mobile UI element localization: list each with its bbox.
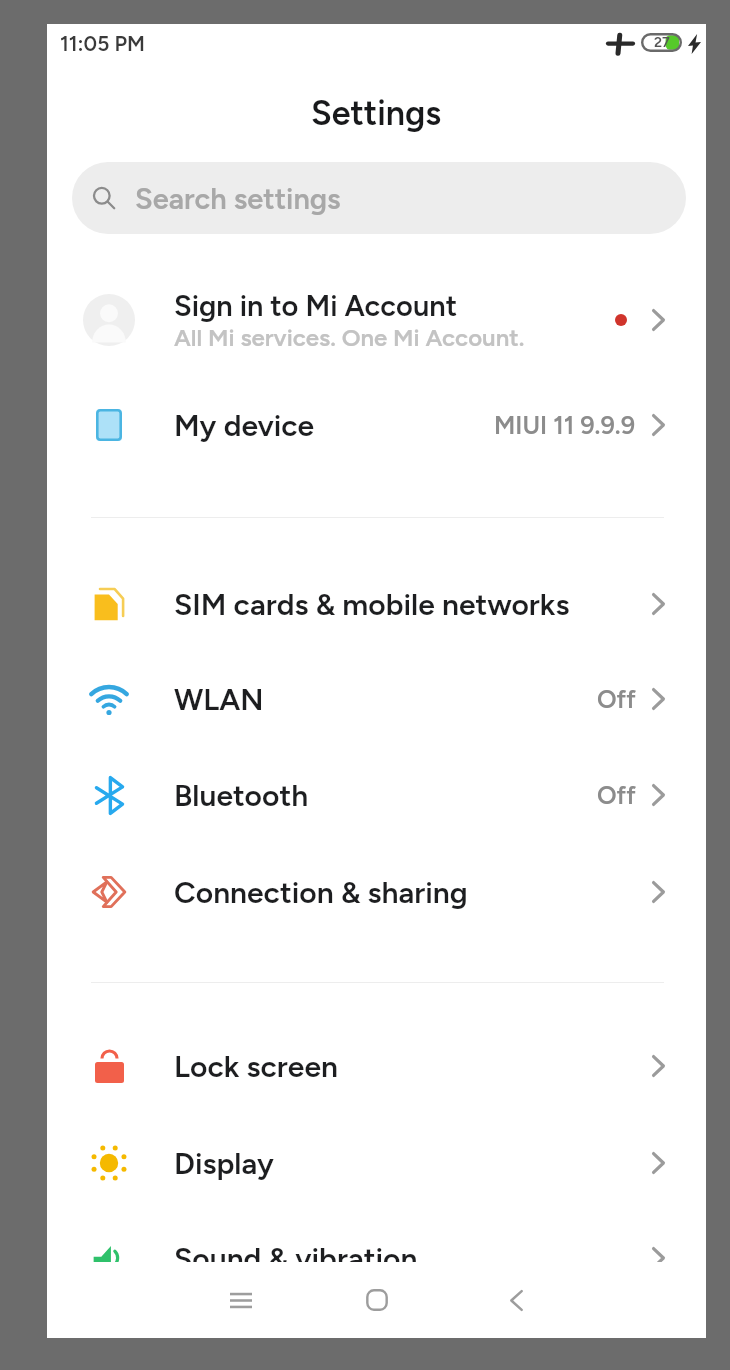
staticText: Lock screen	[174, 1048, 338, 1084]
button[interactable]: Connection & sharing	[47, 844, 706, 940]
button[interactable]: Sign in to Mi Account	[47, 272, 706, 368]
staticText: Sound & vibration	[174, 1240, 418, 1276]
button[interactable]: Lock screen	[47, 1018, 706, 1114]
staticText: Off	[597, 684, 636, 714]
button[interactable]: Sound & vibration	[47, 1210, 706, 1306]
staticText: Connection & sharing	[174, 874, 468, 910]
button[interactable]: Recent apps	[206, 1262, 276, 1338]
staticText: Bluetooth	[174, 777, 309, 813]
staticText: WLAN	[174, 681, 264, 717]
staticText: Off	[597, 780, 636, 810]
button[interactable]: Home	[342, 1262, 412, 1338]
staticText: Search settings	[135, 181, 341, 216]
staticText: All Mi services. One Mi Account.	[174, 323, 525, 352]
staticText: 11:05 PM	[60, 31, 145, 56]
button[interactable]: Back	[481, 1262, 551, 1338]
staticText: My device	[174, 407, 315, 443]
staticText: Settings	[311, 93, 442, 134]
button[interactable]: Bluetooth	[47, 747, 706, 843]
staticText: 27	[654, 34, 670, 51]
button[interactable]: SIM cards & mobile networks	[47, 556, 706, 652]
button[interactable]: My device	[47, 377, 706, 473]
staticText: Sign in to Mi Account	[174, 288, 458, 323]
staticText: Display	[174, 1145, 274, 1181]
button[interactable]: Display	[47, 1115, 706, 1211]
button[interactable]: WLAN	[47, 651, 706, 747]
button[interactable]: Search settings	[72, 162, 686, 234]
staticText: SIM cards & mobile networks	[174, 586, 570, 622]
staticText: MIUI 11 9.9.9	[494, 410, 636, 440]
